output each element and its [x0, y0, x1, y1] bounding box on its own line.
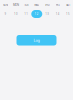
staticText: SUN — [3, 3, 8, 7]
staticText: TUE — [24, 3, 28, 7]
button[interactable]: SUN — [0, 2, 10, 18]
button[interactable]: FRI — [52, 2, 62, 18]
button[interactable]: Log — [16, 35, 56, 45]
staticText: 12 — [35, 12, 39, 16]
button[interactable]: WED — [31, 2, 42, 18]
staticText: 14 — [56, 12, 60, 16]
staticText: 9 — [4, 12, 6, 16]
staticText: WED — [34, 3, 39, 7]
staticText: FRI — [56, 3, 60, 7]
staticText: 10 — [14, 12, 18, 16]
staticText: MON — [13, 3, 19, 7]
staticText: 13 — [45, 12, 49, 16]
staticText: 11 — [24, 12, 28, 16]
staticText: Log — [33, 38, 39, 43]
button[interactable]: THU — [42, 2, 52, 18]
staticText: THU — [45, 3, 50, 7]
staticText: SAT — [66, 3, 70, 7]
button[interactable]: SAT — [63, 2, 73, 18]
staticText: 15 — [66, 12, 70, 16]
button[interactable]: TUE — [21, 2, 31, 18]
button[interactable]: MON — [10, 2, 21, 18]
